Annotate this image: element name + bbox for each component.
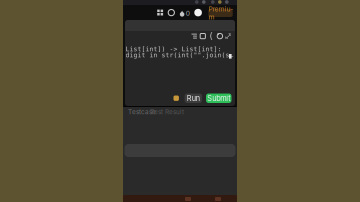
button[interactable]: Testcase (128, 108, 156, 116)
staticText: Run (187, 94, 200, 103)
button[interactable]: Daily streak (180, 9, 190, 17)
button[interactable]: Test Result (150, 108, 184, 116)
staticText: Testcase (128, 108, 156, 116)
button[interactable]: Format code (191, 33, 197, 39)
staticText: List[int]) -> List[int]: (125, 45, 221, 53)
staticText: 0 (186, 9, 190, 17)
button[interactable]: Notes (200, 33, 205, 39)
staticText: ( (209, 31, 214, 41)
button[interactable]: Snippets (209, 33, 214, 39)
button[interactable]: Undo (217, 33, 223, 39)
button[interactable]: Layout (157, 10, 163, 16)
button[interactable]: Settings (168, 9, 174, 16)
button[interactable]: Run (185, 93, 202, 103)
staticText: Test Result (150, 108, 184, 116)
button[interactable]: Submit (206, 93, 231, 103)
staticText: digit in str(int("".join(s))+1)) (125, 51, 235, 59)
button[interactable]: Premium (208, 9, 233, 17)
staticText: Premium (208, 5, 232, 21)
button[interactable]: Profile (194, 9, 202, 16)
button[interactable]: Hints (173, 95, 179, 101)
button[interactable]: Full screen (225, 33, 231, 39)
staticText: Submit (207, 94, 230, 103)
